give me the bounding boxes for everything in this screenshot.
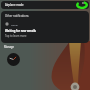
staticText: Other notifications (5, 14, 29, 18)
staticText: Airplane mode (5, 3, 24, 7)
button[interactable]: Manage (4, 45, 14, 49)
staticText: Waiting for new emails (5, 29, 36, 33)
other: Settings (76, 1, 88, 9)
staticText: Tap to learn more (5, 34, 27, 38)
button[interactable]: Clock widget (7, 53, 20, 66)
button[interactable]: Other notifications (1, 11, 89, 43)
staticText: Gmail (11, 23, 18, 26)
button[interactable]: Airplane mode (1, 1, 89, 9)
